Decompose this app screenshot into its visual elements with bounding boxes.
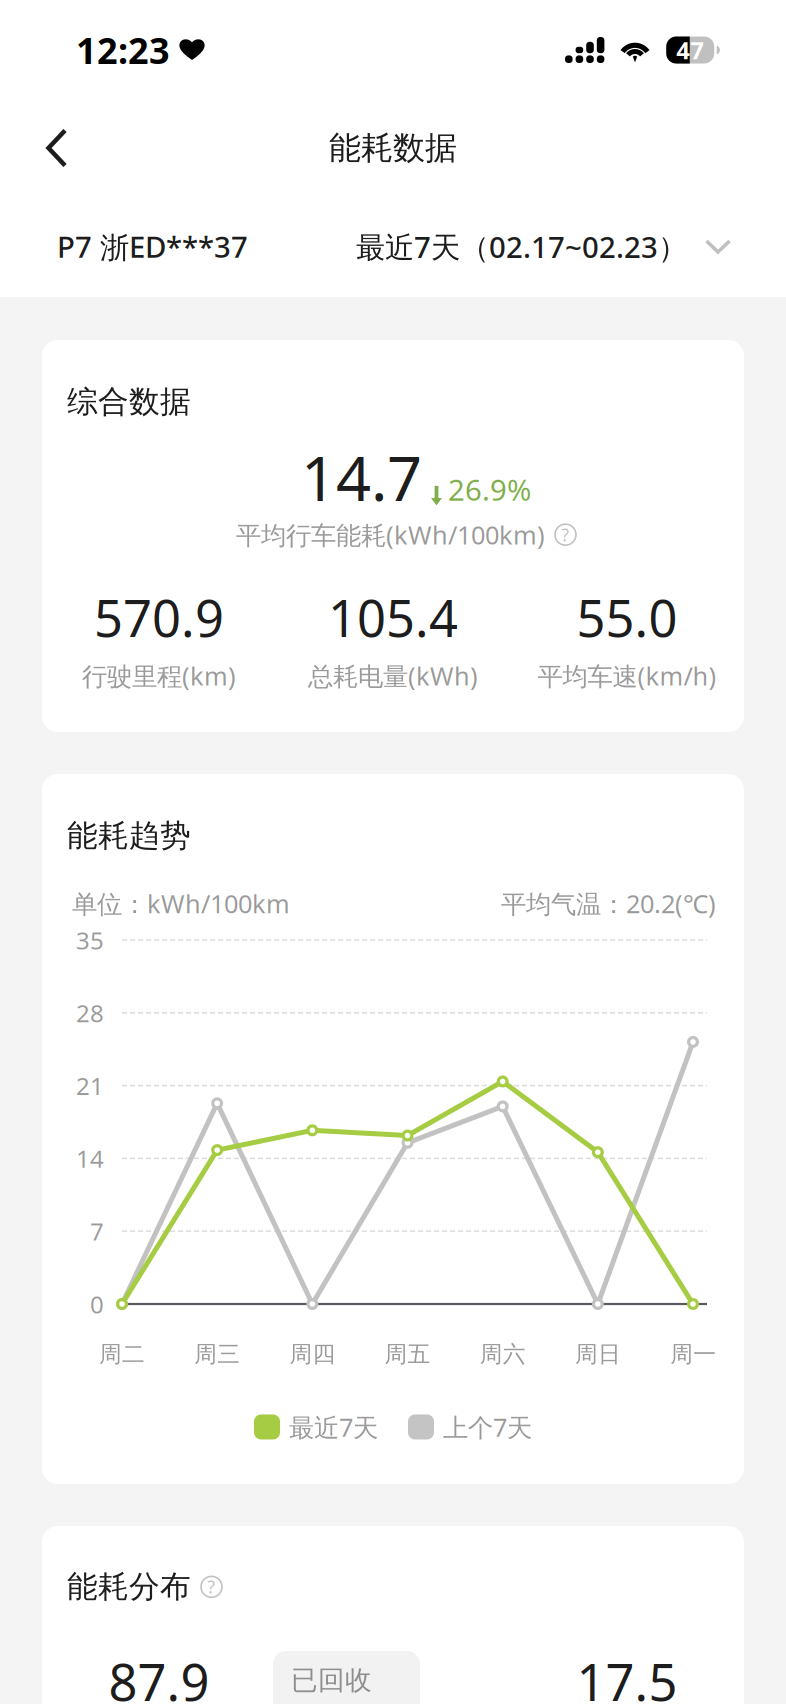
- staticText: 0: [90, 1288, 104, 1320]
- staticText: 14.7: [301, 436, 422, 518]
- staticText: 最近7天: [289, 1410, 378, 1444]
- staticText: 平均行车能耗(kWh/100km): [236, 518, 545, 551]
- button[interactable]: 最近7天（02.17~02.23）: [356, 227, 731, 266]
- staticText: 26.9%: [448, 470, 531, 509]
- staticText: 7: [90, 1215, 104, 1247]
- staticText: 14: [76, 1143, 104, 1174]
- staticText: 12:23: [76, 26, 170, 74]
- staticText: 周一: [670, 1340, 716, 1368]
- staticText: 周四: [289, 1340, 335, 1368]
- staticText: 570.9: [94, 584, 224, 651]
- staticText: 单位：kWh/100km: [72, 887, 290, 920]
- staticText: 总耗电量(kWh): [308, 659, 478, 693]
- staticText: 87.9: [108, 1648, 209, 1704]
- staticText: 平均气温：20.2(℃): [501, 887, 716, 920]
- staticText: 综合数据: [67, 383, 191, 421]
- staticText: 35: [76, 924, 104, 956]
- staticText: 周五: [385, 1340, 431, 1368]
- staticText: 周三: [194, 1340, 240, 1368]
- staticText: 最近7天（02.17~02.23）: [356, 227, 687, 266]
- staticText: 已回收: [291, 1664, 372, 1697]
- staticText: 行驶里程(km): [82, 659, 236, 693]
- staticText: 能耗分布: [67, 1568, 191, 1606]
- staticText: ?: [561, 523, 569, 546]
- staticText: P7 浙ED***37: [57, 227, 248, 266]
- staticText: ?: [207, 1575, 215, 1598]
- staticText: 17.5: [576, 1648, 677, 1704]
- staticText: 周二: [99, 1340, 145, 1368]
- staticText: 21: [76, 1070, 104, 1102]
- staticText: 上个7天: [443, 1410, 532, 1444]
- button[interactable]: Back: [0, 112, 94, 184]
- staticText: 平均车速(km/h): [537, 659, 716, 693]
- staticText: 47: [676, 34, 704, 66]
- staticText: 周日: [575, 1340, 621, 1368]
- staticText: 能耗趋势: [67, 817, 191, 855]
- staticText: 55.0: [576, 584, 677, 651]
- staticText: 周六: [480, 1340, 526, 1368]
- staticText: 28: [76, 997, 104, 1029]
- staticText: 能耗数据: [329, 128, 457, 168]
- staticText: 105.4: [328, 584, 458, 651]
